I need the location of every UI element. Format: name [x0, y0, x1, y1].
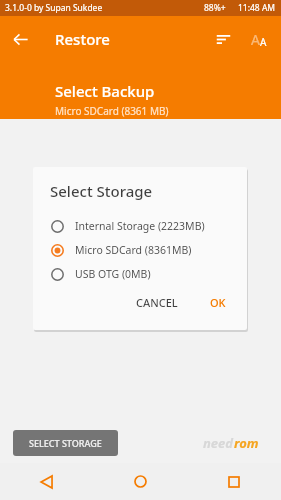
button[interactable]: Home: [93, 463, 187, 500]
button[interactable]: Micro SDCard (8361MB): [33, 238, 247, 262]
staticText: A: [260, 35, 267, 49]
button[interactable]: SELECT STORAGE: [13, 430, 118, 456]
staticText: CANCEL: [136, 295, 178, 310]
button[interactable]: OK: [201, 290, 235, 315]
staticText: 11:48 AM: [238, 2, 276, 14]
staticText: need: [203, 434, 234, 452]
button[interactable]: Recent apps: [187, 463, 281, 500]
button[interactable]: CANCEL: [127, 290, 187, 315]
staticText: Micro SDCard (8361 MB): [55, 104, 169, 118]
button[interactable]: Internal Storage (2223MB): [33, 214, 247, 238]
staticText: Restore: [55, 29, 110, 49]
staticText: Select Backup: [55, 81, 155, 101]
staticText: Select Storage: [50, 181, 153, 201]
button[interactable]: USB OTG (0MB): [33, 262, 247, 286]
button[interactable]: Back: [0, 19, 40, 59]
staticText: A: [251, 30, 260, 49]
button[interactable]: Sort: [205, 21, 241, 57]
staticText: 88%+: [204, 2, 226, 14]
staticText: 3.1.0-0 by Supan Sukdee: [5, 2, 103, 14]
button[interactable]: Back: [0, 463, 93, 500]
staticText: SELECT STORAGE: [29, 437, 102, 449]
staticText: Internal Storage (2223MB): [75, 219, 205, 233]
staticText: Micro SDCard (8361MB): [75, 243, 192, 257]
button[interactable]: Text size: [241, 21, 277, 57]
staticText: OK: [210, 295, 226, 310]
staticText: rom: [234, 434, 259, 452]
staticText: USB OTG (0MB): [75, 267, 151, 281]
